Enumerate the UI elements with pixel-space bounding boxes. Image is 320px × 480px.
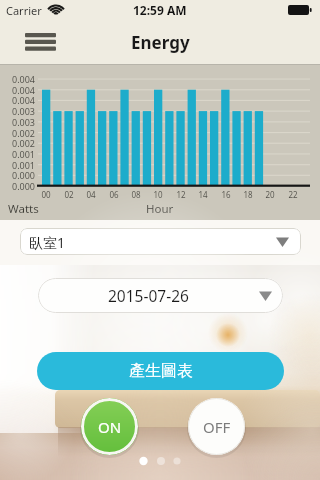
button[interactable]: 2015-07-26 <box>38 278 283 313</box>
button[interactable]: 臥室1 <box>20 228 301 255</box>
staticText: 20 <box>262 189 278 200</box>
staticText: 2015-07-26 <box>108 285 189 306</box>
staticText: 10 <box>150 189 166 200</box>
button[interactable]: OFF <box>188 398 245 455</box>
staticText: 16 <box>218 189 234 200</box>
staticText: 02 <box>61 189 77 200</box>
staticText: 0.004 <box>0 84 35 96</box>
staticText: 14 <box>195 189 211 200</box>
staticText: OFF <box>203 417 231 437</box>
staticText: 0.004 <box>0 94 35 106</box>
staticText: Energy <box>131 31 190 54</box>
staticText: Carrier <box>6 3 42 18</box>
staticText: 00 <box>38 189 54 200</box>
staticText: 04 <box>83 189 99 200</box>
staticText: 08 <box>128 189 144 200</box>
button[interactable] <box>25 33 56 51</box>
staticText: 12 <box>173 189 189 200</box>
staticText: 0.001 <box>0 148 35 160</box>
staticText: 06 <box>106 189 122 200</box>
staticText: Hour <box>146 201 174 217</box>
button[interactable]: ON <box>81 398 138 455</box>
staticText: 臥室1 <box>29 233 66 252</box>
staticText: 產生圖表 <box>129 361 193 381</box>
staticText: 0.003 <box>0 116 35 128</box>
staticText: 22 <box>285 189 301 200</box>
staticText: Watts <box>8 201 39 217</box>
staticText: 0.001 <box>0 159 35 171</box>
staticText: 0.002 <box>0 127 35 139</box>
staticText: 0.000 <box>0 180 35 192</box>
staticText: 0.002 <box>0 137 35 149</box>
staticText: 0.004 <box>0 73 35 85</box>
staticText: ON <box>98 417 122 437</box>
staticText: 0.003 <box>0 105 35 117</box>
staticText: 18 <box>240 189 256 200</box>
button[interactable]: 產生圖表 <box>37 352 284 390</box>
staticText: 12:59 AM <box>133 2 187 18</box>
staticText: 0.000 <box>0 169 35 181</box>
